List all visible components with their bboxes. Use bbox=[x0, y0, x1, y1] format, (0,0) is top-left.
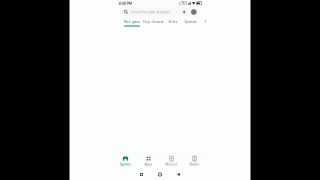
button[interactable]: Movies bbox=[160, 154, 183, 169]
staticText: Apps bbox=[144, 162, 152, 166]
button[interactable]: Apps bbox=[137, 154, 160, 169]
staticText: Movies bbox=[165, 162, 177, 166]
button[interactable]: Search for apps & games bbox=[122, 8, 199, 16]
staticText: Top charts bbox=[142, 19, 163, 24]
staticText: For you bbox=[124, 19, 140, 24]
button[interactable]: For you bbox=[123, 17, 141, 26]
button[interactable]: Games bbox=[114, 154, 137, 169]
button[interactable]: Home bbox=[151, 170, 169, 178]
staticText: 4:58 PM bbox=[119, 1, 133, 6]
button[interactable]: Top charts bbox=[141, 17, 165, 26]
staticText: Events bbox=[184, 19, 196, 24]
button[interactable]: Kids bbox=[165, 17, 181, 26]
staticText: LTE1 bbox=[179, 1, 187, 5]
staticText: Pr bbox=[204, 19, 209, 24]
staticText: Search for apps & games bbox=[131, 10, 171, 14]
staticText: Kids bbox=[168, 19, 177, 24]
staticText: Books bbox=[189, 162, 199, 166]
button[interactable]: Books bbox=[183, 154, 206, 169]
button[interactable]: Events bbox=[181, 17, 200, 26]
button[interactable]: Recents bbox=[132, 170, 151, 178]
button[interactable]: Back bbox=[169, 170, 188, 178]
button[interactable]: Pr bbox=[200, 17, 214, 26]
staticText: Games bbox=[120, 162, 131, 166]
